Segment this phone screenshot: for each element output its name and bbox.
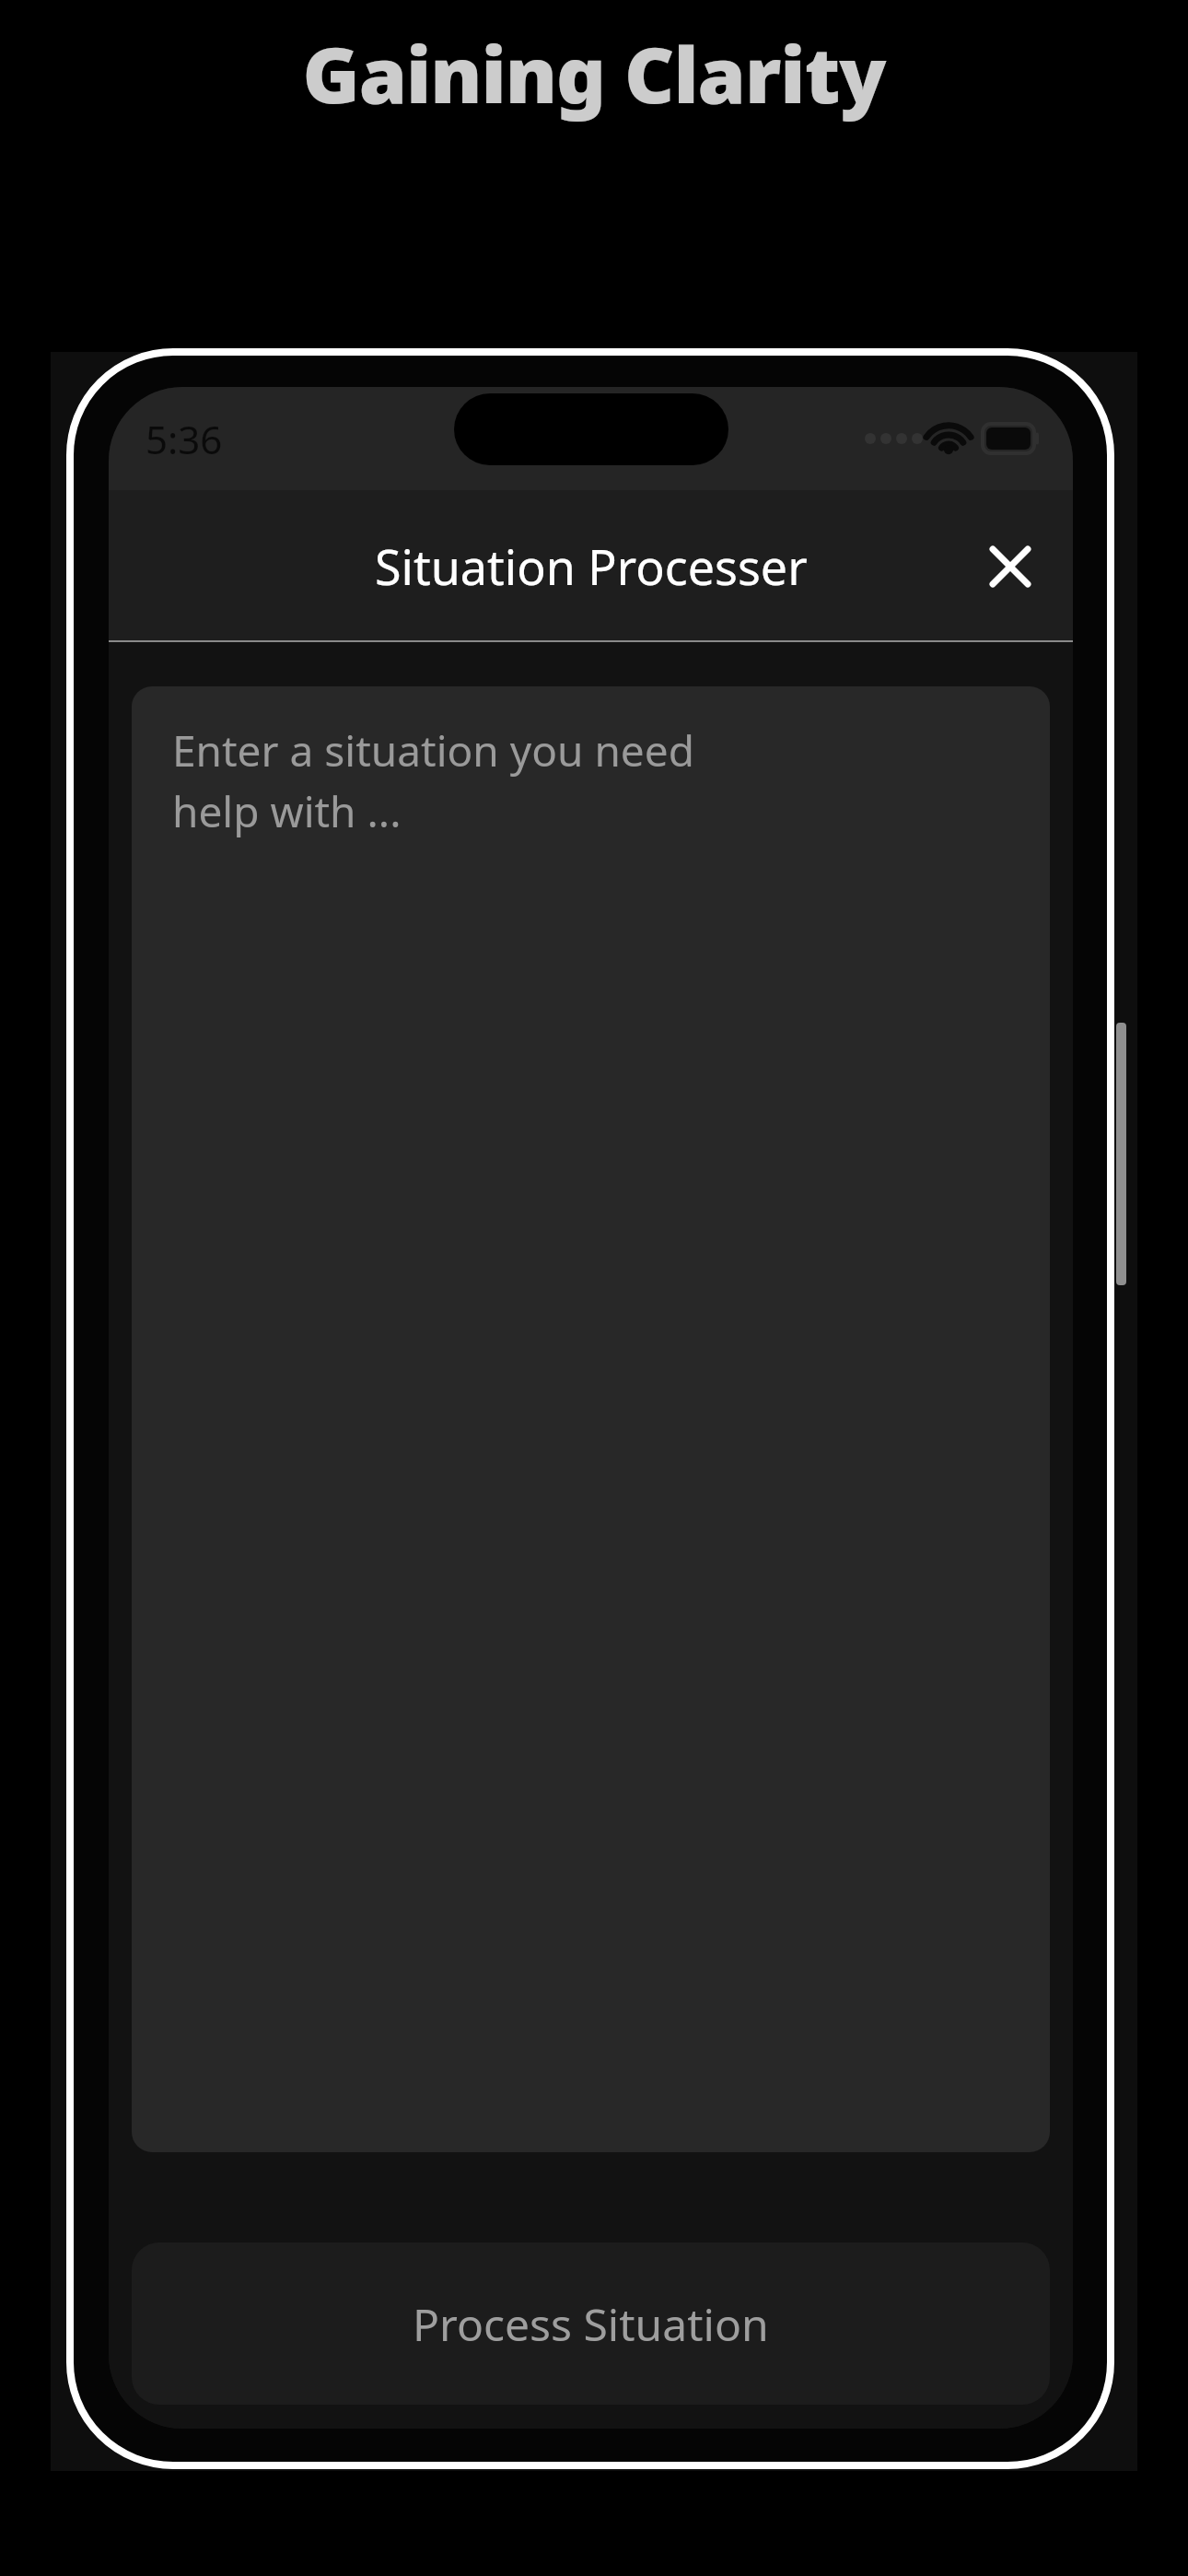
button[interactable]: Close bbox=[966, 522, 1054, 611]
button[interactable]: Enter a situation you need help with ... bbox=[132, 686, 1050, 2152]
staticText: Enter a situation you need help with ... bbox=[172, 721, 694, 839]
staticText: Situation Processer bbox=[375, 533, 808, 599]
button[interactable]: Process Situation bbox=[132, 2242, 1050, 2405]
staticText: Process Situation bbox=[413, 2294, 769, 2354]
staticText: 5:36 bbox=[146, 413, 223, 465]
staticText: Gaining Clarity bbox=[302, 20, 886, 125]
